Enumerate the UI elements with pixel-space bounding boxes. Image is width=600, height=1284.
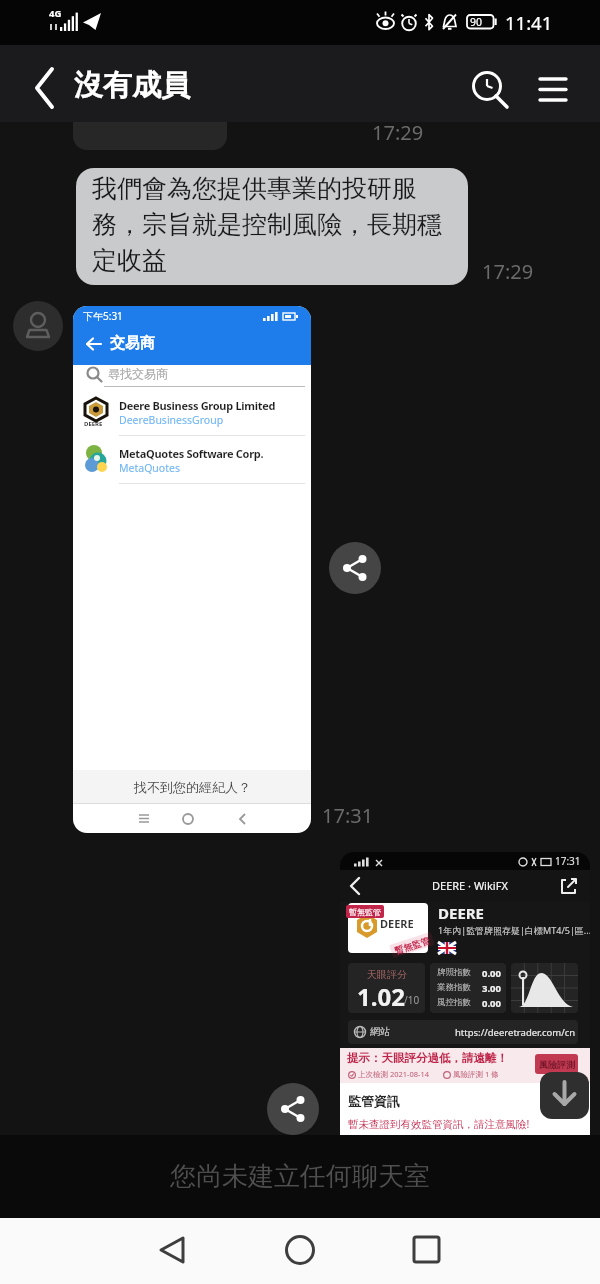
staticText: 1.02 (357, 980, 405, 1013)
staticText: 0.00 (482, 967, 501, 980)
staticText: 天眼評分 (367, 968, 407, 981)
staticText: 監管資訊 (348, 1093, 400, 1109)
staticText: 3.00 (482, 982, 501, 995)
staticText: 17:29 (372, 119, 424, 146)
staticText: 暫無監管 (393, 935, 431, 956)
staticText: 90 (470, 15, 483, 29)
staticText: 找不到您的經紀人？ (134, 779, 251, 795)
button[interactable] (403, 1228, 449, 1274)
staticText: 風險評測 (539, 1059, 575, 1070)
button[interactable]: 17:31 (340, 852, 590, 1135)
button[interactable] (329, 542, 381, 594)
staticText: DEERE · WikiFX (432, 878, 508, 893)
staticText: 您尚未建立任何聊天室 (170, 1160, 430, 1193)
staticText: 風險評測 1 條 (453, 1069, 499, 1079)
staticText: 11:41 (505, 10, 553, 35)
staticText: MetaQuotes (119, 461, 180, 475)
staticText: 暫無監管 (349, 907, 381, 917)
staticText: 17:31 (322, 802, 374, 829)
staticText: 交易商 (110, 334, 155, 353)
button[interactable] (540, 1072, 589, 1119)
staticText: 網站 (370, 1025, 390, 1038)
staticText: DEERE (380, 916, 414, 931)
staticText: /10 (404, 993, 420, 1007)
staticText: 沒有成員 (74, 67, 190, 104)
staticText: 提示：天眼評分過低，請遠離！ (347, 1051, 508, 1065)
staticText: 尋找交易商 (108, 366, 168, 381)
staticText: MetaQuotes Software Corp. (119, 446, 264, 461)
button[interactable] (148, 1228, 194, 1274)
staticText: 暫未查證到有效監管資訊，請注意風險! (348, 1117, 530, 1131)
staticText: 17:29 (482, 258, 534, 285)
button[interactable] (0, 45, 70, 122)
staticText: Deere Business Group Limited (119, 398, 276, 413)
staticText: 上次檢測 2021-08-14 (358, 1069, 430, 1079)
staticText: 0.00 (482, 997, 501, 1010)
staticText: https://deeretrader.com/cn (455, 1026, 576, 1039)
staticText: 業務指數 (437, 982, 471, 993)
button[interactable] (458, 56, 516, 114)
button[interactable]: 您尚未建立任何聊天室 (0, 1135, 600, 1218)
staticText: 17:31 (555, 854, 581, 868)
staticText: DEERE (84, 420, 103, 428)
staticText: 下午5:31 (83, 309, 123, 323)
staticText: DeereBusinessGroup (119, 413, 224, 427)
staticText: 風控指數 (437, 997, 471, 1008)
button[interactable] (13, 301, 63, 351)
staticText: 我們會為您提供專業的投研服 務，宗旨就是控制風險，長期穩 定收益 (92, 173, 442, 276)
staticText: 牌照指數 (437, 967, 471, 978)
button[interactable] (267, 1083, 319, 1135)
button[interactable] (527, 56, 582, 114)
button[interactable]: 風險評測 (535, 1054, 578, 1074)
staticText: DEERE (438, 903, 485, 923)
staticText: 1年內|監管牌照存疑|白標MT4/5|區... (438, 924, 590, 936)
staticText: 4G (49, 7, 62, 20)
button[interactable] (277, 1228, 323, 1274)
button[interactable]: 下午5:31 (73, 306, 311, 833)
